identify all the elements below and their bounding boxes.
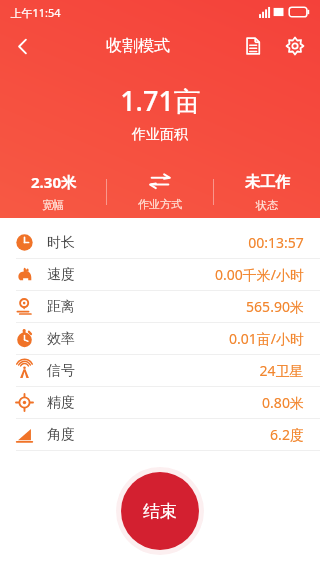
button[interactable]: 未工作	[214, 173, 320, 212]
staticText: 0.80米	[262, 393, 304, 412]
staticText: 状态	[256, 198, 278, 212]
staticText: 作业方式	[138, 197, 182, 211]
staticText: 上午11:54	[10, 5, 61, 20]
staticText: 信号	[47, 362, 75, 380]
button[interactable]: Records	[232, 25, 274, 67]
staticText: 0.00千米/小时	[215, 265, 304, 284]
staticText: 作业面积	[132, 126, 188, 144]
button[interactable]: Settings	[274, 25, 316, 67]
staticText: 宽幅	[42, 198, 64, 212]
staticText: 角度	[47, 426, 75, 444]
button[interactable]: 效率	[0, 323, 320, 354]
button[interactable]: Back	[0, 24, 44, 68]
button[interactable]: 信号	[0, 355, 320, 386]
button[interactable]: 距离	[0, 291, 320, 322]
button[interactable]: 精度	[0, 387, 320, 418]
staticText: 时长	[47, 234, 75, 252]
staticText: 结束	[143, 501, 177, 522]
button[interactable]: 结束	[121, 472, 199, 550]
button[interactable]: 2.30米	[0, 172, 106, 212]
button[interactable]: 时长	[0, 227, 320, 258]
staticText: 00:13:57	[248, 233, 304, 252]
staticText: 效率	[47, 330, 75, 348]
staticText: 未工作	[245, 173, 290, 192]
staticText: 速度	[47, 266, 75, 284]
staticText: 1.71亩	[120, 82, 201, 119]
staticText: 精度	[47, 394, 75, 412]
button[interactable]: 作业方式	[107, 173, 213, 211]
staticText: 2.30米	[31, 172, 76, 192]
staticText: 6.2度	[270, 425, 304, 444]
staticText: 收割模式	[106, 36, 170, 56]
staticText: 0.01亩/小时	[229, 329, 304, 348]
staticText: 距离	[47, 298, 75, 316]
staticText: 565.90米	[246, 297, 304, 316]
staticText: 24卫星	[259, 361, 304, 380]
button[interactable]: 角度	[0, 419, 320, 450]
button[interactable]: 速度	[0, 259, 320, 290]
